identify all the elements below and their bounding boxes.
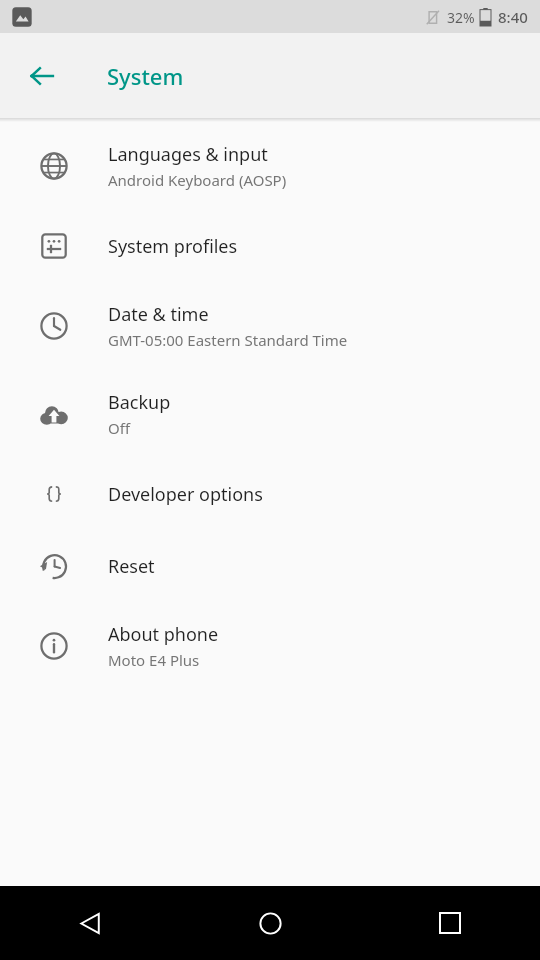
button[interactable]: Reset — [0, 530, 540, 602]
staticText: Off — [108, 418, 131, 438]
staticText: Reset — [108, 554, 155, 579]
staticText: System profiles — [108, 234, 238, 259]
staticText: Developer options — [108, 482, 263, 507]
button[interactable]: Back — [0, 886, 180, 960]
staticText: Date & time — [108, 302, 209, 327]
staticText: 32% — [447, 8, 475, 27]
button[interactable]: Back — [18, 52, 66, 100]
button[interactable]: Home — [180, 886, 360, 960]
staticText: System — [107, 61, 184, 91]
button[interactable]: Backup — [0, 370, 540, 458]
staticText: Moto E4 Plus — [108, 650, 200, 670]
button[interactable]: Date & time — [0, 282, 540, 370]
button[interactable]: Developer options — [0, 458, 540, 530]
staticText: 8:40 — [498, 7, 528, 27]
button[interactable]: Recent apps — [360, 886, 540, 960]
button[interactable]: System profiles — [0, 210, 540, 282]
staticText: Languages & input — [108, 142, 268, 167]
staticText: About phone — [108, 622, 219, 647]
staticText: Backup — [108, 390, 171, 415]
button[interactable]: Languages & input — [0, 122, 540, 210]
staticText: GMT-05:00 Eastern Standard Time — [108, 330, 348, 350]
staticText: Android Keyboard (AOSP) — [108, 170, 287, 190]
button[interactable]: About phone — [0, 602, 540, 690]
